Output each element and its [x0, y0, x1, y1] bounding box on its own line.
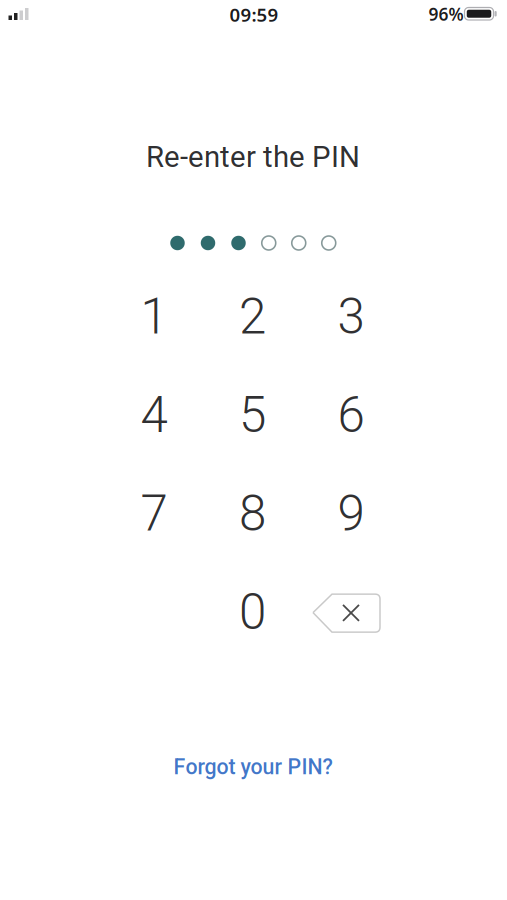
staticText: Re-enter the PIN — [146, 140, 360, 174]
button[interactable]: Delete — [302, 563, 400, 661]
staticText: 1 — [140, 288, 167, 346]
button[interactable]: 7 — [105, 464, 203, 563]
staticText: Forgot your PIN? — [173, 754, 332, 779]
staticText: 7 — [140, 485, 167, 543]
staticText: 8 — [239, 485, 266, 543]
button[interactable]: 5 — [203, 366, 302, 464]
button[interactable]: 4 — [105, 366, 203, 464]
staticText: 0 — [239, 583, 266, 641]
staticText: 4 — [140, 386, 167, 444]
staticText: 2 — [239, 288, 266, 346]
button[interactable]: Forgot your PIN? — [173, 754, 332, 779]
button[interactable]: 8 — [203, 464, 302, 563]
button[interactable]: 3 — [302, 267, 400, 366]
staticText: 5 — [239, 386, 266, 444]
staticText: 3 — [337, 288, 364, 346]
button[interactable]: 9 — [302, 464, 400, 563]
staticText: 09:59 — [229, 2, 278, 27]
button[interactable]: 6 — [302, 366, 400, 464]
button[interactable]: 1 — [105, 267, 203, 366]
button[interactable]: 0 — [203, 563, 302, 661]
staticText: 96% — [428, 2, 463, 25]
button[interactable]: 2 — [203, 267, 302, 366]
staticText: 6 — [337, 386, 364, 444]
staticText: 9 — [337, 485, 364, 543]
